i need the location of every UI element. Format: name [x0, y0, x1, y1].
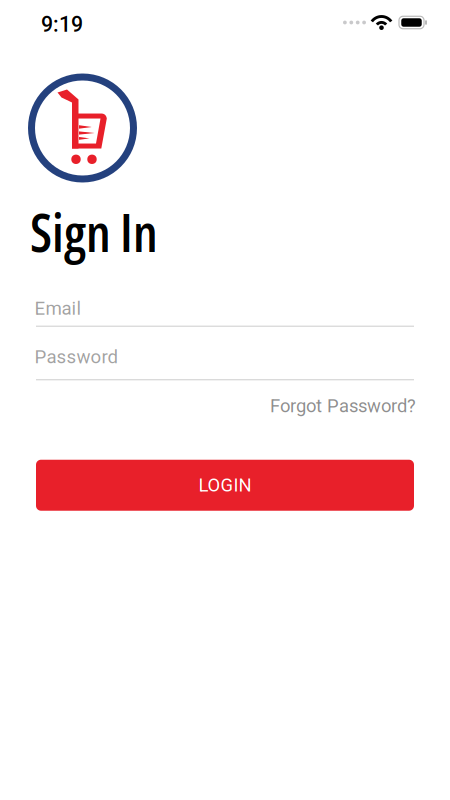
- staticText: Email: [34, 297, 81, 319]
- staticText: Sign In: [30, 196, 158, 267]
- staticText: Forgot Password?: [270, 395, 416, 417]
- button[interactable]: LOGIN: [36, 460, 414, 511]
- staticText: Password: [34, 346, 118, 368]
- staticText: 9:19: [41, 12, 83, 37]
- button[interactable]: Forgot Password?: [270, 395, 416, 417]
- staticText: LOGIN: [198, 474, 251, 496]
- button[interactable]: Password: [0, 344, 450, 380]
- button[interactable]: Email: [0, 297, 450, 327]
